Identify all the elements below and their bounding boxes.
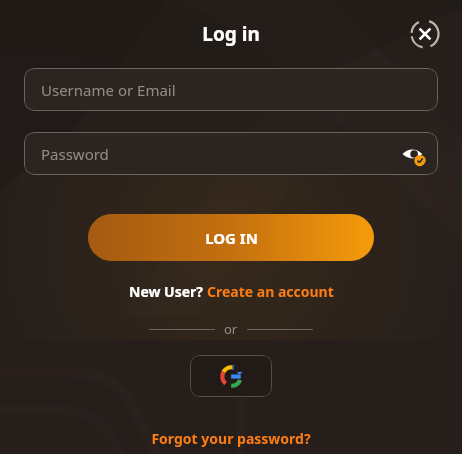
button[interactable]: Password <box>24 132 438 175</box>
staticText: Log in <box>202 21 260 47</box>
button[interactable]: Create an account <box>207 282 334 301</box>
button[interactable]: Toggle password visibility <box>398 139 428 169</box>
staticText: Create an account <box>207 282 334 301</box>
button[interactable]: Close <box>408 17 442 51</box>
button[interactable]: Username or Email <box>24 68 438 111</box>
staticText: New User? <box>129 282 207 301</box>
button[interactable]: Sign in with Google <box>190 355 272 397</box>
button[interactable]: Forgot your password? <box>151 429 311 448</box>
staticText: Username or Email <box>41 80 176 100</box>
staticText: or <box>224 320 238 338</box>
button[interactable]: LOG IN <box>88 214 374 261</box>
staticText: LOG IN <box>205 228 258 248</box>
staticText: Forgot your password? <box>151 429 311 448</box>
staticText: Password <box>41 144 109 164</box>
